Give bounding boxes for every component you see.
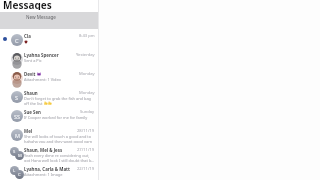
staticText: Sue Sen xyxy=(24,109,41,115)
staticText: Attachment: 1 Video xyxy=(24,77,61,82)
staticText: Attachment: 1 Image xyxy=(24,172,63,177)
staticText: M xyxy=(18,153,22,159)
staticText: She will looks of touch a good and to ha… xyxy=(24,134,95,143)
staticText: If Cooper worked for me for family xyxy=(24,115,88,120)
staticText: Messages xyxy=(3,0,52,10)
button[interactable]: M xyxy=(0,124,98,143)
staticText: 27/11/19 xyxy=(77,147,95,153)
staticText: 22/11/19 xyxy=(77,166,95,172)
staticText: Lyahna Spencer xyxy=(24,52,59,58)
staticText: Sunday xyxy=(80,109,95,115)
button[interactable]: C xyxy=(0,29,98,48)
staticText: 28/11/19 xyxy=(77,128,95,134)
staticText: Devit xyxy=(24,71,36,77)
staticText: SS xyxy=(14,113,21,120)
button[interactable]: L xyxy=(0,162,98,180)
staticText: New Message xyxy=(26,14,56,20)
staticText: Sent a Pic xyxy=(24,58,42,63)
button[interactable]: SS xyxy=(0,105,98,124)
staticText: C xyxy=(15,37,19,44)
staticText: 8:43 pm xyxy=(79,33,95,39)
button[interactable]: Devit xyxy=(0,67,98,86)
staticText: Lyahna, Carla & Matt xyxy=(24,166,70,172)
staticText: Mel xyxy=(24,128,33,134)
staticText: S xyxy=(13,149,16,155)
button[interactable]: S xyxy=(0,86,98,105)
staticText: Yeah every dime re considering out, got … xyxy=(24,153,95,162)
staticText: Monday xyxy=(79,90,95,96)
staticText: M xyxy=(15,132,20,139)
staticText: Shaun, Mel & Jess xyxy=(24,147,63,153)
staticText: Don't forget to grab the fish and bag xyxy=(24,96,91,101)
staticText: Cla xyxy=(24,33,31,39)
button[interactable]: Lyahna Spencer xyxy=(0,48,98,67)
staticText: L xyxy=(13,168,16,174)
staticText: Monday xyxy=(79,71,95,77)
staticText: S xyxy=(15,94,19,101)
button[interactable]: New Message xyxy=(0,12,98,29)
staticText: Shaun xyxy=(24,90,38,96)
staticText: off the list xyxy=(24,101,43,105)
staticText: C xyxy=(18,172,21,178)
staticText: Yesterday xyxy=(76,52,95,58)
button[interactable]: S xyxy=(0,143,98,162)
